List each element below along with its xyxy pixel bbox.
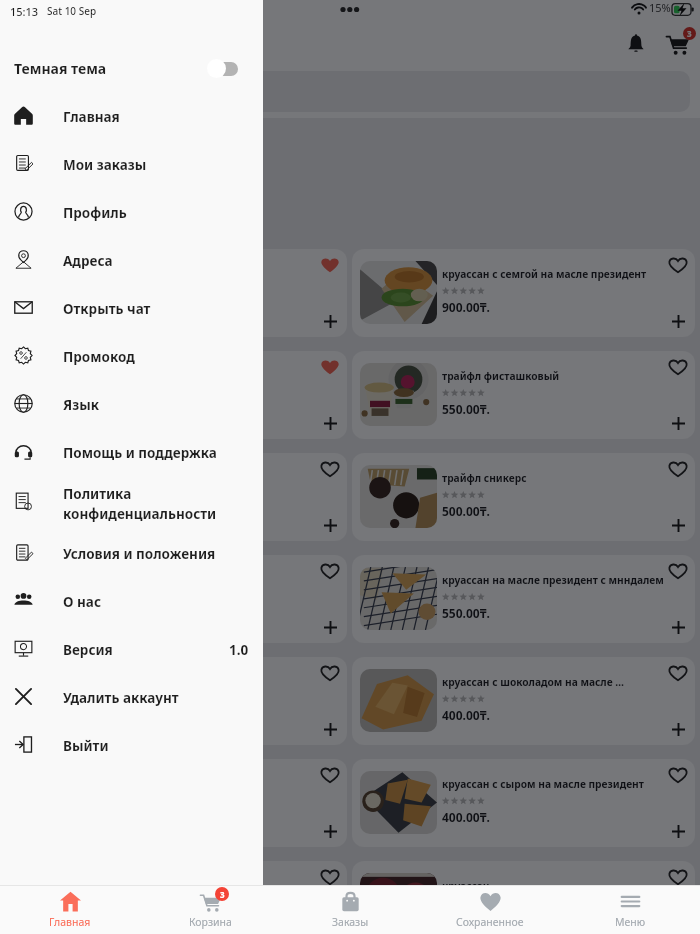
staticText: круассан — [442, 879, 490, 893]
staticText: 900.00₸. — [442, 299, 490, 315]
button[interactable]: Favourite — [313, 861, 347, 893]
staticText: 500.00₸. — [442, 503, 490, 519]
button[interactable]: Favourite — [661, 351, 695, 383]
button[interactable]: Мои заказы — [0, 141, 263, 189]
staticText: 1.0 — [229, 641, 249, 659]
button[interactable]: Favourite — [661, 453, 695, 485]
button[interactable]: круассан — [352, 861, 695, 934]
button[interactable]: Главная — [0, 886, 140, 934]
button[interactable]: трайфл медовый — [5, 555, 347, 643]
button[interactable]: Favourite — [313, 555, 347, 587]
button[interactable]: Add — [313, 713, 347, 745]
button[interactable]: Add — [313, 611, 347, 643]
button[interactable]: Условия и положения — [0, 530, 263, 578]
staticText: Профиль — [63, 204, 127, 222]
staticText: Помощь и поддержка — [63, 444, 217, 462]
button[interactable]: Notifications — [616, 23, 656, 63]
button[interactable]: Add — [313, 902, 347, 934]
button[interactable]: трайфл малиновый — [5, 249, 347, 337]
button[interactable]: Add — [313, 815, 347, 847]
button[interactable]: Cart — [657, 23, 697, 63]
staticText: Sat 10 Sep — [47, 4, 97, 18]
button[interactable]: Промокод — [0, 333, 263, 381]
staticText: 3 — [687, 28, 692, 39]
button[interactable]: круассан с сыром на масле президент — [352, 759, 695, 847]
button[interactable]: круассан мини — [5, 657, 347, 745]
button[interactable] — [10, 71, 690, 112]
staticText: Адреса — [63, 252, 113, 270]
button[interactable]: Favourite — [313, 249, 347, 281]
button[interactable]: Favourite — [661, 657, 695, 689]
staticText: Темная тема — [14, 59, 107, 78]
staticText: 15% — [649, 0, 671, 14]
button[interactable]: трайфл сникерс — [352, 453, 695, 541]
button[interactable]: Add — [661, 713, 695, 745]
button[interactable]: трайфл сникерс — [5, 453, 347, 541]
staticText: О нас — [63, 593, 101, 611]
staticText: Версия — [63, 641, 113, 659]
button[interactable]: Add — [661, 509, 695, 541]
staticText: 400.00₸. — [442, 707, 490, 723]
button[interactable]: Язык — [0, 381, 263, 429]
staticText: Мои заказы — [63, 156, 147, 174]
button[interactable]: круассан — [5, 861, 347, 934]
staticText: 550.00₸. — [95, 401, 143, 417]
button[interactable]: Favourite — [313, 657, 347, 689]
staticText: круассан — [95, 879, 143, 893]
button[interactable]: Заказы — [280, 886, 420, 934]
button[interactable]: Favourite — [661, 861, 695, 893]
button[interactable]: круассан с шоколадом на масле … — [352, 657, 695, 745]
button[interactable]: Add — [661, 815, 695, 847]
staticText: 550.00₸. — [442, 605, 490, 621]
button[interactable]: Favourite — [313, 453, 347, 485]
button[interactable]: Профиль — [0, 189, 263, 237]
button[interactable]: Главная — [0, 93, 263, 141]
staticText: трайфл фисташковый — [442, 369, 560, 383]
button[interactable]: Адреса — [0, 237, 263, 285]
button[interactable]: Политика конфиденциальности — [0, 477, 263, 530]
button[interactable]: Favourite — [313, 351, 347, 383]
button[interactable]: круассан ягодный — [5, 759, 347, 847]
staticText: 400.00₸. — [442, 911, 490, 921]
button[interactable]: Add — [313, 509, 347, 541]
staticText: круассан на масле президент с мнндалем — [442, 573, 664, 587]
button[interactable]: Add — [661, 407, 695, 439]
staticText: Условия и положения — [63, 545, 216, 563]
button[interactable]: Выйти — [0, 722, 263, 770]
button[interactable]: трайфл фисташковый — [352, 351, 695, 439]
button[interactable]: Темная тема — [0, 46, 263, 90]
button[interactable]: Сохраненное — [420, 886, 560, 934]
button[interactable]: 3 — [140, 886, 280, 934]
staticText: Заказы — [332, 915, 369, 929]
button[interactable]: Помощь и поддержка — [0, 429, 263, 477]
button[interactable]: Favourite — [313, 759, 347, 791]
button[interactable]: Открыть чат — [0, 285, 263, 333]
button[interactable]: круассан с семгой на масле президент — [352, 249, 695, 337]
staticText: Промокод — [63, 348, 135, 366]
button[interactable]: Add — [313, 305, 347, 337]
button[interactable]: Версия — [0, 626, 263, 674]
button[interactable]: Меню — [560, 886, 700, 934]
staticText: круассан с шоколадом на масле … — [442, 675, 625, 689]
button[interactable]: Favourite — [661, 555, 695, 587]
staticText: 400.00₸. — [442, 809, 490, 825]
button[interactable]: Add — [313, 407, 347, 439]
button[interactable]: Удалить аккаунт — [0, 674, 263, 722]
button[interactable]: круассан на масле президент с мнндалем — [352, 555, 695, 643]
staticText: Язык — [63, 396, 99, 414]
button[interactable]: Favourite — [661, 759, 695, 791]
button[interactable]: Add — [661, 611, 695, 643]
button[interactable]: круассан на масле президент — [5, 351, 347, 439]
button[interactable]: О нас — [0, 578, 263, 626]
staticText: Открыть чат — [63, 300, 151, 318]
button[interactable]: Add — [661, 305, 695, 337]
button[interactable]: Favourite — [661, 249, 695, 281]
